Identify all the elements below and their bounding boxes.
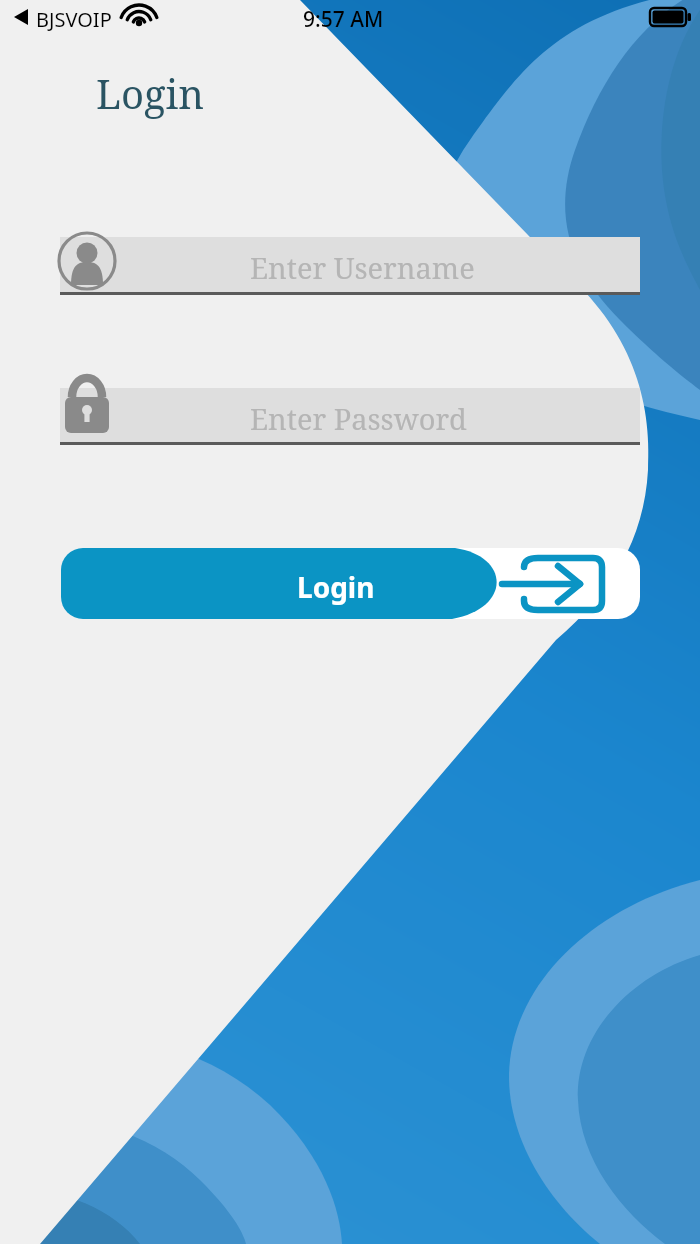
staticText: Login bbox=[297, 568, 375, 606]
staticText: Enter Password bbox=[250, 399, 467, 438]
button[interactable]: Login bbox=[61, 548, 640, 619]
staticText: Login bbox=[96, 66, 205, 120]
staticText: Enter Username bbox=[250, 248, 475, 287]
button[interactable]: Enter Username bbox=[60, 237, 640, 295]
button[interactable]: Enter Password bbox=[60, 388, 640, 446]
button[interactable]: Sign in bbox=[506, 552, 626, 616]
staticText: BJSVOIP bbox=[36, 6, 112, 33]
staticText: 9:57 AM bbox=[303, 5, 384, 34]
